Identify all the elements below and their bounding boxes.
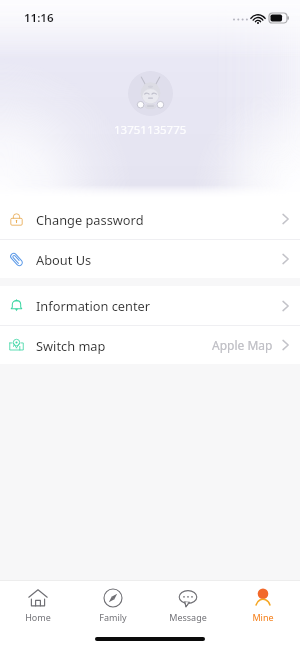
staticText: 13751135775 xyxy=(114,122,187,138)
button[interactable]: About Us xyxy=(0,240,300,278)
staticText: Apple Map xyxy=(212,337,273,353)
staticText: Home xyxy=(25,611,51,623)
staticText: Family xyxy=(99,611,127,623)
button[interactable]: Information center xyxy=(0,286,300,325)
button[interactable]: Home xyxy=(0,581,75,629)
staticText: Change password xyxy=(36,211,144,228)
button[interactable]: Mine xyxy=(225,581,300,629)
button[interactable]: Family xyxy=(75,581,150,629)
button[interactable]: Change password xyxy=(0,199,300,239)
staticText: Message xyxy=(169,611,207,623)
button[interactable]: Switch map xyxy=(0,326,300,364)
staticText: Switch map xyxy=(36,337,106,354)
staticText: Mine xyxy=(252,611,274,623)
staticText: About Us xyxy=(36,251,92,268)
button[interactable]: Message xyxy=(150,581,225,629)
staticText: Information center xyxy=(36,297,151,314)
staticText: 11:16 xyxy=(24,10,54,26)
